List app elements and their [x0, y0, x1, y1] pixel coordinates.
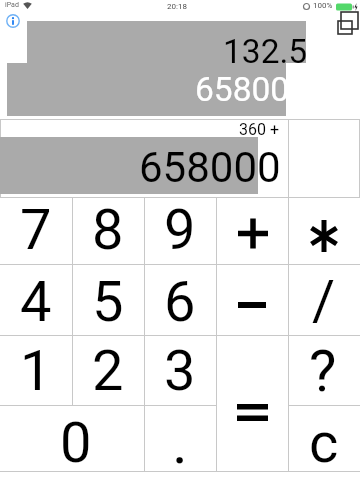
button[interactable]: 5	[72, 265, 144, 336]
button[interactable]: 3	[144, 336, 216, 406]
staticText: 5	[92, 269, 124, 335]
button[interactable]: 0	[0, 406, 144, 472]
button[interactable]: 7	[0, 198, 72, 265]
staticText: 4	[20, 269, 52, 335]
staticText: 20:18	[167, 2, 187, 11]
button[interactable]	[216, 198, 288, 265]
staticText: 658000	[139, 143, 281, 192]
button[interactable]: /	[288, 265, 360, 336]
button[interactable]: 4	[0, 265, 72, 336]
staticText: 132.5	[223, 32, 308, 71]
button[interactable]	[6, 14, 20, 28]
staticText: 65800	[195, 70, 290, 109]
staticText: 3	[164, 338, 196, 404]
staticText: 0	[60, 410, 92, 476]
staticText: 2	[92, 338, 124, 404]
staticText: 7	[20, 197, 52, 263]
staticText: 100%	[313, 1, 333, 10]
staticText: 8	[92, 197, 124, 263]
button[interactable]: .	[144, 406, 216, 472]
button[interactable]: ?	[288, 336, 360, 406]
button[interactable]: 1	[0, 336, 72, 406]
staticText: 1	[20, 338, 52, 404]
button[interactable]: 9	[144, 198, 216, 265]
staticText: iPad	[5, 1, 19, 9]
button[interactable]: 8	[72, 198, 144, 265]
button[interactable]	[288, 198, 360, 265]
staticText: 360 +	[239, 120, 280, 139]
staticText: 9	[164, 197, 196, 263]
staticText: ?	[309, 337, 337, 405]
button[interactable]: c	[288, 406, 360, 472]
button[interactable]	[216, 336, 288, 472]
button[interactable]: 6	[144, 265, 216, 336]
staticText: 6	[164, 269, 196, 335]
staticText: /	[312, 268, 336, 334]
button[interactable]	[216, 265, 288, 336]
staticText: .	[172, 407, 188, 473]
button[interactable]	[336, 10, 360, 36]
button[interactable]: 2	[72, 336, 144, 406]
staticText: c	[309, 410, 339, 476]
